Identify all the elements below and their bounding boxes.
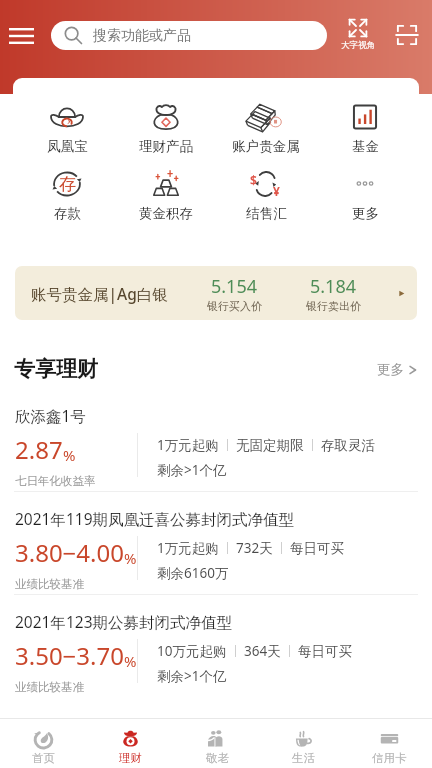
staticText: $	[250, 172, 257, 188]
staticText: ¥	[273, 183, 280, 199]
button[interactable]: Menu	[4, 18, 39, 53]
staticText: 七日年化收益率	[15, 474, 96, 488]
staticText: 剩余>1个亿	[157, 461, 227, 479]
staticText: 存款	[54, 205, 81, 222]
button[interactable]: 黄金积存	[120, 171, 212, 222]
button[interactable]: 基金	[319, 104, 411, 155]
staticText: 业绩比较基准	[15, 680, 84, 694]
staticText: 5.184	[310, 274, 357, 299]
staticText: 银行买入价	[207, 299, 262, 313]
button[interactable]: 欣添鑫1号	[0, 389, 432, 491]
staticText: 2.87	[15, 433, 63, 466]
staticText: 更多	[352, 205, 379, 222]
staticText: 结售汇	[246, 205, 287, 222]
staticText: 3.80−4.00	[15, 536, 124, 569]
button[interactable]: 首页	[0, 722, 87, 765]
staticText: 搜索功能或产品	[93, 27, 191, 45]
staticText: 364天	[244, 642, 281, 660]
staticText: 理财	[119, 751, 142, 765]
staticText: 5.154	[211, 274, 258, 299]
staticText: 首页	[32, 751, 55, 765]
button[interactable]: 大字视角	[335, 18, 381, 51]
staticText: 732天	[236, 539, 273, 557]
button[interactable]: 账号贵金属|Ag白银	[15, 266, 417, 320]
button[interactable]: 更多	[319, 171, 411, 222]
staticText: 业绩比较基准	[15, 577, 84, 591]
button[interactable]: 信用卡	[346, 722, 432, 765]
staticText: 专享理财	[14, 356, 98, 382]
button[interactable]: Scan	[392, 20, 422, 50]
staticText: 账号贵金属|Ag白银	[31, 283, 168, 304]
staticText: 1万元起购	[157, 539, 219, 557]
button[interactable]: 存	[21, 171, 113, 222]
staticText: 基金	[352, 138, 379, 155]
button[interactable]: 2021年123期公募封闭式净值型	[0, 595, 432, 697]
staticText: 剩余>1个亿	[157, 667, 227, 685]
button[interactable]: 搜索功能或产品	[51, 21, 327, 50]
staticText: 欣添鑫1号	[15, 405, 86, 426]
staticText: 生活	[292, 751, 315, 765]
staticText: 敬老	[206, 751, 229, 765]
staticText: 大字视角	[341, 40, 375, 51]
staticText: 银行卖出价	[306, 299, 361, 313]
staticText: 剩余6160万	[157, 564, 229, 582]
staticText: 存	[59, 174, 76, 195]
staticText: 每日可买	[298, 643, 352, 660]
staticText: 信用卡	[372, 751, 407, 765]
button[interactable]: 账户贵金属	[220, 104, 312, 155]
button[interactable]: 敬老	[174, 722, 260, 765]
button[interactable]: 凤凰宝	[21, 104, 113, 155]
staticText: 10万元起购	[157, 642, 227, 660]
staticText: 凤凰宝	[47, 138, 88, 155]
button[interactable]: 理财产品	[120, 104, 212, 155]
button[interactable]: 更多	[377, 361, 418, 378]
button[interactable]: 理财	[87, 722, 174, 765]
staticText: 理财产品	[139, 138, 193, 155]
button[interactable]: 生活	[260, 722, 346, 765]
staticText: 更多	[377, 361, 404, 378]
staticText: 3.50−3.70	[15, 639, 124, 672]
staticText: 每日可买	[290, 540, 344, 557]
staticText: 黄金积存	[139, 205, 193, 222]
staticText: 账户贵金属	[232, 138, 300, 155]
staticText: 1万元起购	[157, 436, 219, 454]
button[interactable]: $	[220, 171, 312, 222]
staticText: 2021年123期公募封闭式净值型	[15, 611, 233, 632]
staticText: %	[124, 548, 137, 568]
staticText: %	[124, 651, 137, 671]
staticText: 2021年119期凤凰迁喜公募封闭式净值型	[15, 508, 295, 529]
staticText: %	[63, 445, 76, 465]
staticText: 存取灵活	[321, 437, 375, 454]
staticText: 无固定期限	[236, 437, 304, 454]
button[interactable]: 2021年119期凤凰迁喜公募封闭式净值型	[0, 492, 432, 594]
